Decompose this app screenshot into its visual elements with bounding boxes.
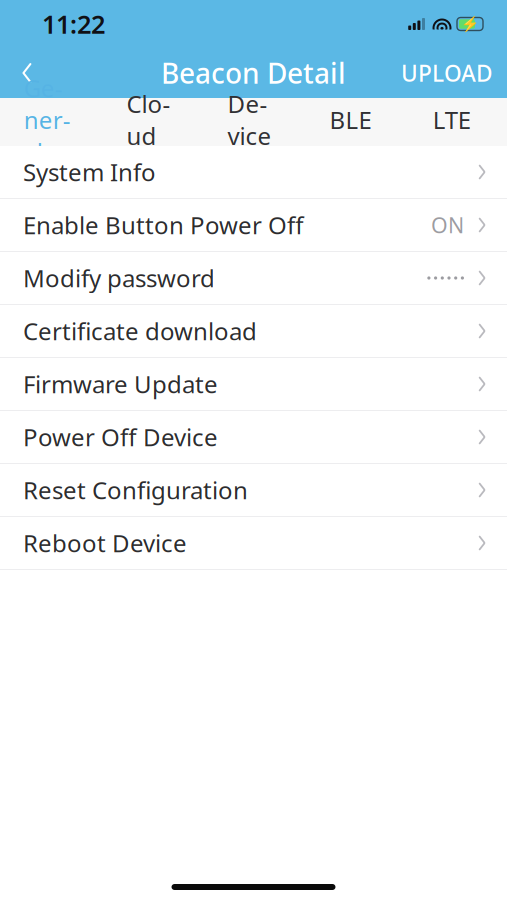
- staticText: UPLOAD: [401, 58, 493, 88]
- button[interactable]: Reboot Device: [0, 517, 507, 570]
- button[interactable]: Device: [224, 98, 275, 146]
- staticText: 11:22: [42, 7, 105, 41]
- button[interactable]: Power Off Device: [0, 411, 507, 464]
- staticText: Cloud: [126, 88, 170, 151]
- button[interactable]: Certificate download: [0, 305, 507, 358]
- button[interactable]: Back: [0, 50, 54, 96]
- button[interactable]: Reset Configuration: [0, 464, 507, 517]
- staticText: Reset Configuration: [23, 474, 248, 506]
- staticText: LTE: [433, 104, 471, 136]
- button[interactable]: LTE: [426, 98, 477, 146]
- staticText: Reboot Device: [23, 527, 187, 559]
- staticText: System Info: [23, 156, 156, 188]
- button[interactable]: General: [22, 98, 73, 146]
- staticText: Enable Button Power Off: [23, 209, 304, 241]
- staticText: General: [24, 72, 71, 167]
- button[interactable]: BLE: [325, 98, 376, 146]
- staticText: Firmware Update: [23, 368, 218, 400]
- staticText: Device: [227, 88, 271, 151]
- button[interactable]: Modify password: [0, 252, 507, 305]
- button[interactable]: Cloud: [123, 98, 174, 146]
- staticText: Power Off Device: [23, 421, 218, 453]
- button[interactable]: System Info: [0, 146, 507, 199]
- staticText: Beacon Detail: [161, 54, 346, 92]
- button[interactable]: UPLOAD: [389, 50, 505, 96]
- button[interactable]: Enable Button Power Off: [0, 199, 507, 252]
- staticText: BLE: [330, 104, 372, 136]
- staticText: Modify password: [23, 262, 215, 294]
- staticText: Certificate download: [23, 315, 257, 347]
- button[interactable]: Firmware Update: [0, 358, 507, 411]
- staticText: ⚡: [461, 16, 479, 32]
- staticText: ON: [431, 211, 464, 239]
